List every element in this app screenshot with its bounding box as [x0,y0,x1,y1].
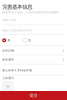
staticText: 请填写以下信息，以便为您提供更好的服务 [2,11,59,14]
staticText: 上传照片 [2,76,14,80]
button[interactable]: 提交 [0,91,67,100]
staticText: 提交 [29,93,37,98]
button[interactable]: 上传照片 [2,81,14,92]
button[interactable]: 出生日期 [2,46,65,55]
staticText: 请输入姓名 [2,18,17,21]
staticText: 请上传本人手持证件照 [2,69,32,72]
staticText: 男 [7,39,10,42]
staticText: 完善基本信息 [2,4,32,10]
staticText: 所在城市 [2,58,14,61]
staticText: 女 [29,39,32,42]
button[interactable]: 女 [23,38,32,42]
staticText: 出生日期 [2,49,14,52]
button[interactable]: 所在城市 [2,55,65,64]
button[interactable]: 男 [2,38,10,42]
staticText: 请输入您的身份证号码 [2,29,32,32]
